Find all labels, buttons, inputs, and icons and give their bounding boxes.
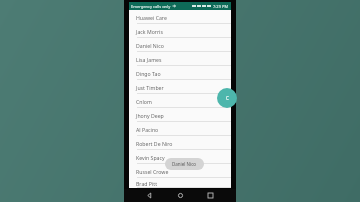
staticText: Dingo Tao	[136, 70, 161, 77]
button[interactable]: Brad Pitt	[129, 178, 231, 188]
staticText: Just Timber	[136, 84, 164, 91]
staticText: Huawei Care	[136, 14, 167, 21]
staticText: Jhony Deep	[136, 112, 164, 119]
staticText: Jack Morris	[136, 28, 163, 35]
button[interactable]: Back	[144, 190, 155, 201]
button[interactable]: Daniel Nico	[129, 38, 231, 52]
button[interactable]: Jhony Deep	[129, 108, 231, 122]
staticText: Lisa James	[136, 56, 162, 63]
button[interactable]: Recents	[205, 190, 216, 201]
button[interactable]: Just Timber	[129, 80, 231, 94]
staticText: Kevin Spacy	[136, 154, 165, 161]
button[interactable]: Robert De Niro	[129, 136, 231, 150]
staticText: Cnlom	[136, 98, 152, 105]
staticText: Brad Pitt	[136, 180, 158, 187]
staticText: Emergency calls only	[131, 4, 171, 9]
button[interactable]: Cnlom	[129, 94, 231, 108]
staticText: Al Pacino	[136, 126, 159, 133]
staticText: Robert De Niro	[136, 140, 173, 147]
staticText: Daniel Nico	[136, 42, 164, 49]
button[interactable]: Huawei Care	[129, 10, 231, 24]
button[interactable]: Home	[175, 190, 186, 201]
button[interactable]: Russel Crowe	[129, 164, 231, 178]
button[interactable]: Fast scroll	[217, 88, 237, 108]
button[interactable]: Al Pacino	[129, 122, 231, 136]
staticText: Russel Crowe	[136, 168, 169, 175]
button[interactable]: Lisa James	[129, 52, 231, 66]
button[interactable]: Kevin Spacy	[129, 150, 231, 164]
button[interactable]: Jack Morris	[129, 24, 231, 38]
staticText: Daniel Nico	[172, 161, 197, 167]
staticText: C	[226, 95, 229, 101]
staticText: 7:29 PM	[213, 4, 229, 9]
button[interactable]: Dingo Tao	[129, 66, 231, 80]
